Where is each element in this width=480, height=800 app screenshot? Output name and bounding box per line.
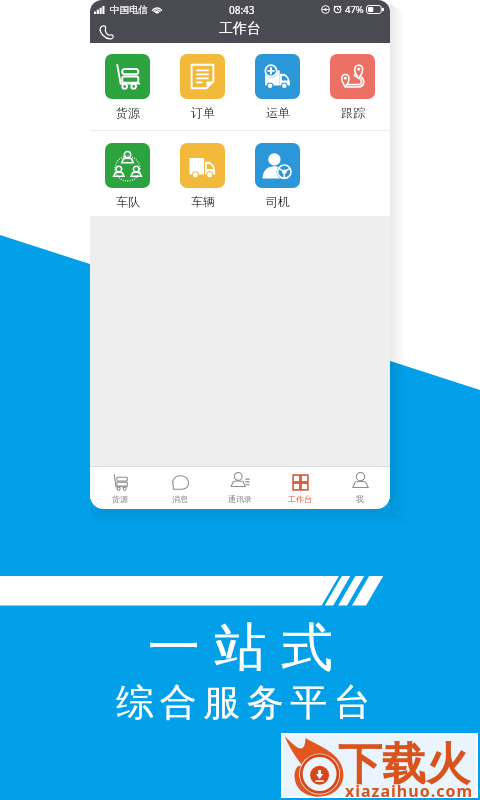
button[interactable]: 订单 [165,43,240,126]
button[interactable]: 运单 [240,43,315,126]
staticText: 47% [345,3,364,16]
button[interactable]: 司机 [240,132,315,215]
staticText: 通讯录 [228,494,252,504]
staticText: 货源 [116,105,140,120]
staticText: 下载火 [338,737,470,792]
staticText: 消息 [172,494,188,504]
staticText: 订单 [191,105,215,120]
button[interactable]: 我 [330,467,390,509]
staticText: 车队 [116,194,140,209]
button[interactable]: 通讯录 [210,467,270,509]
staticText: 工作台 [219,20,261,38]
button[interactable]: 消息 [150,467,210,509]
staticText: 我 [356,494,364,504]
staticText: xiazaihuo.com [345,780,474,800]
button[interactable]: Call [96,22,116,42]
button[interactable]: 车队 [90,132,165,215]
staticText: 司机 [266,194,290,209]
staticText: 车辆 [191,194,215,209]
button[interactable]: 工作台 [270,467,330,509]
staticText: 一站式 [148,615,348,681]
staticText: 跟踪 [341,105,365,120]
staticText: 中国电信 [110,4,148,16]
button[interactable]: 货源 [90,467,150,509]
button[interactable]: 跟踪 [315,43,390,126]
staticText: 运单 [266,105,290,120]
staticText: 货源 [112,494,128,504]
staticText: 08:43 [229,3,255,17]
staticText: 工作台 [288,494,312,504]
staticText: 综合服务平台 [113,679,374,726]
button[interactable]: 货源 [90,43,165,126]
button[interactable]: 车辆 [165,132,240,215]
